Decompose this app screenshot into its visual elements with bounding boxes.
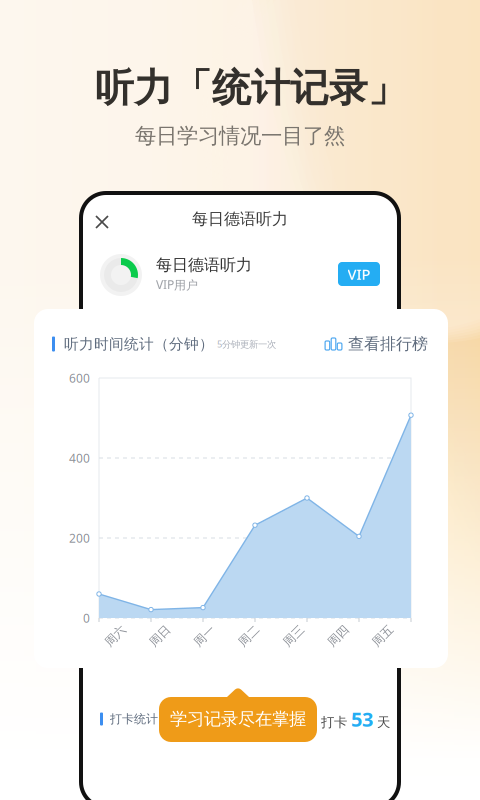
button[interactable]: 查看排行榜: [325, 334, 428, 354]
staticText: 200: [69, 530, 90, 546]
staticText: 每日德语听力: [156, 255, 252, 275]
staticText: VIP用户: [156, 277, 198, 293]
staticText: 600: [69, 370, 90, 386]
staticText: 周四: [326, 629, 350, 643]
staticText: 周六: [103, 629, 127, 643]
staticText: 每日德语听力: [192, 209, 288, 229]
staticText: 周日: [148, 629, 172, 643]
staticText: 周五: [371, 629, 395, 643]
staticText: VIP: [347, 264, 370, 284]
staticText: 周三: [282, 629, 306, 643]
staticText: 周一: [192, 629, 216, 643]
staticText: 53: [351, 706, 373, 732]
staticText: 0: [83, 610, 90, 626]
staticText: 听力「统计记录」: [95, 64, 407, 112]
staticText: 打卡统计: [110, 712, 158, 726]
staticText: 每日学习情况一目了然: [135, 123, 345, 149]
staticText: 天: [377, 714, 390, 730]
staticText: 查看排行榜: [348, 334, 428, 354]
button[interactable]: VIP: [338, 262, 380, 286]
staticText: 打卡: [321, 714, 347, 730]
staticText: 5分钟更新一次: [217, 338, 276, 350]
staticText: 学习记录尽在掌握: [170, 708, 306, 730]
staticText: 400: [69, 450, 90, 466]
staticText: 周二: [237, 629, 261, 643]
staticText: 听力时间统计（分钟）: [64, 335, 214, 353]
button[interactable]: Close: [87, 207, 117, 237]
